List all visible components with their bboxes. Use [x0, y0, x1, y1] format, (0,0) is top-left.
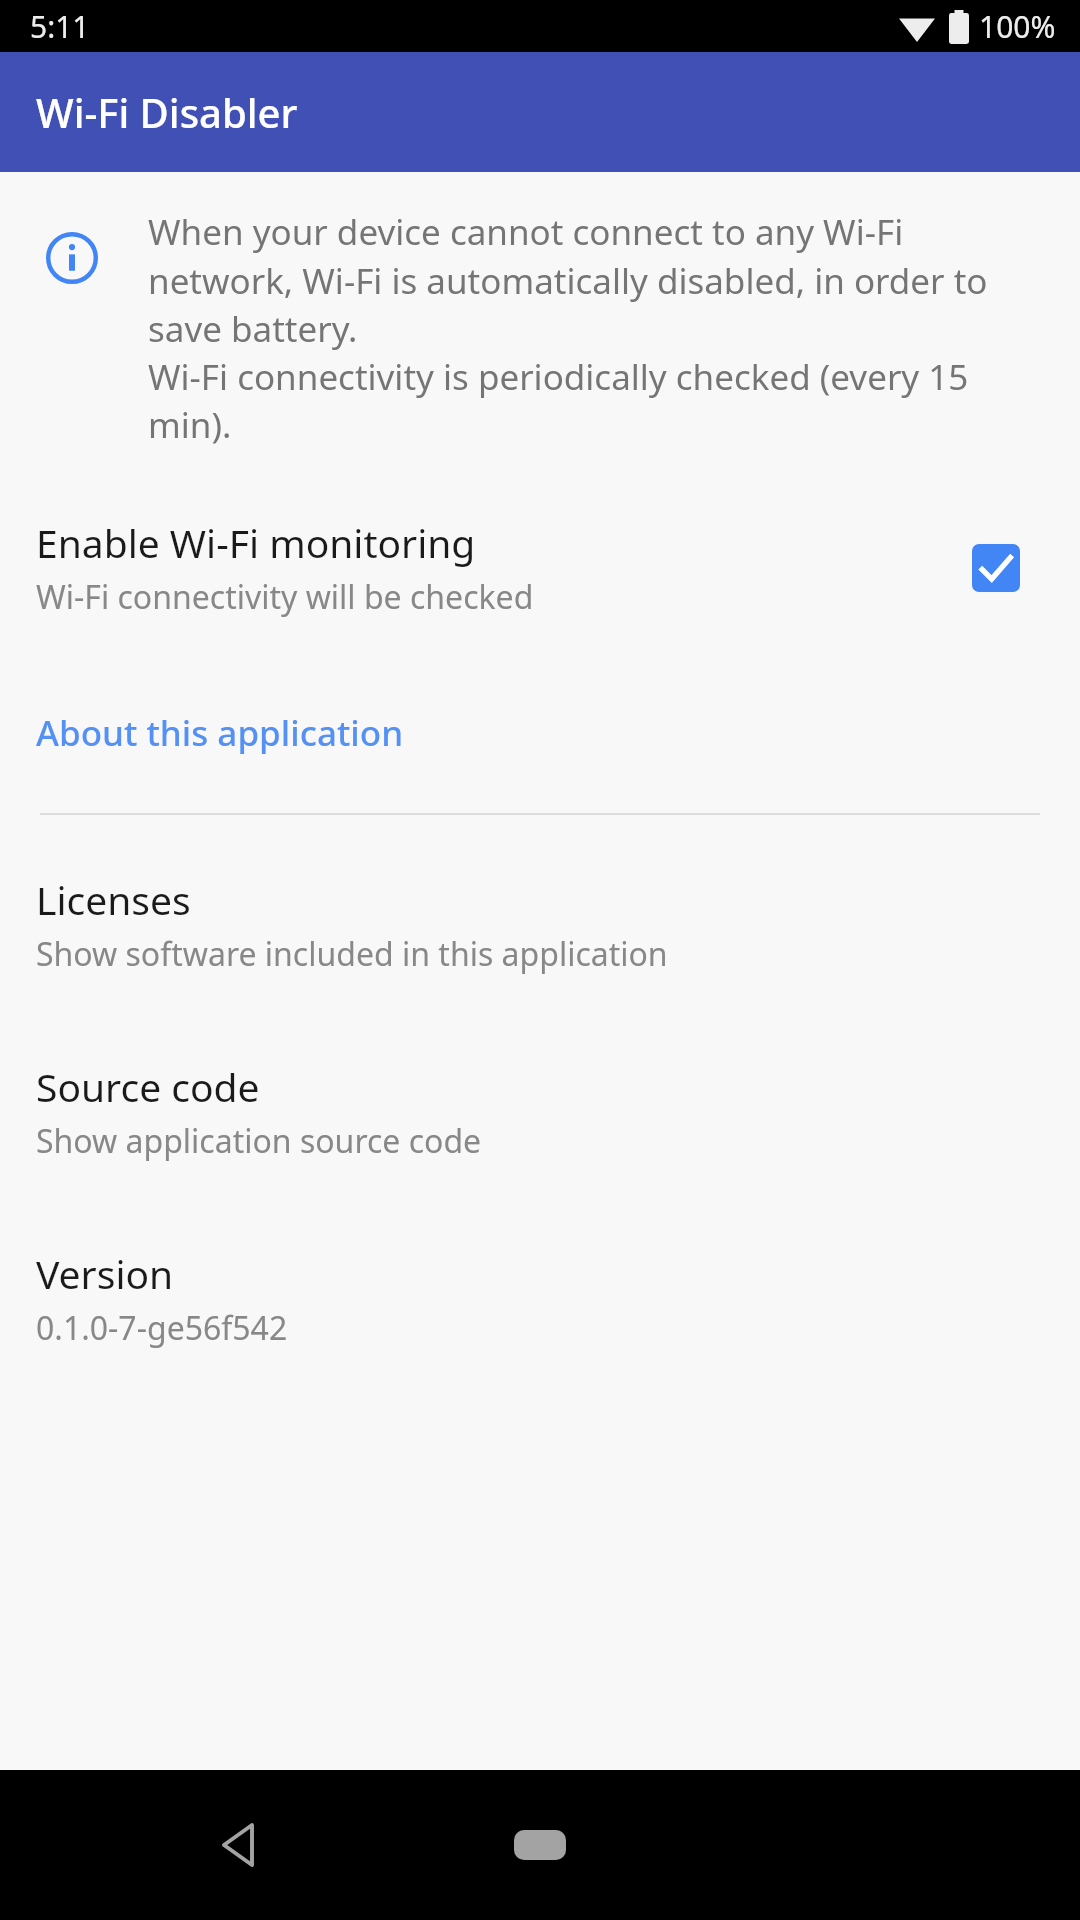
staticText: 5:11: [30, 6, 90, 47]
staticText: Licenses: [36, 873, 191, 926]
staticText: When your device cannot connect to any W…: [148, 208, 1018, 448]
button[interactable]: Version: [0, 1239, 1080, 1358]
staticText: Wi-Fi Disabler: [36, 85, 298, 139]
other: Enable Wi-Fi monitoring: [972, 544, 1020, 592]
button[interactable]: Licenses: [0, 865, 1080, 984]
staticText: 0.1.0-7-ge56f542: [36, 1306, 288, 1350]
staticText: Enable Wi-Fi monitoring: [36, 516, 476, 569]
button[interactable]: About this application: [0, 701, 1080, 765]
button[interactable]: Source code: [0, 1052, 1080, 1171]
button[interactable]: Home: [480, 1797, 600, 1893]
staticText: Source code: [36, 1060, 260, 1113]
button[interactable]: Enable Wi-Fi monitoring: [0, 508, 1080, 627]
staticText: About this application: [36, 709, 404, 757]
staticText: Show software included in this applicati…: [36, 932, 668, 976]
staticText: 100%: [979, 6, 1056, 47]
button[interactable]: Back: [190, 1797, 286, 1893]
staticText: Show application source code: [36, 1119, 482, 1163]
other: Information: [46, 232, 98, 284]
staticText: Wi-Fi connectivity will be checked: [36, 575, 534, 619]
staticText: Version: [36, 1247, 174, 1300]
